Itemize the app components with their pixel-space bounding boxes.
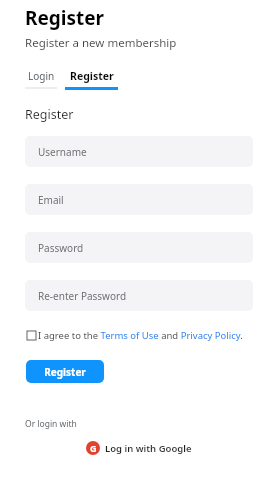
staticText: Login	[28, 69, 55, 83]
button[interactable]: Re-enter Password	[25, 280, 253, 311]
staticText: G	[90, 442, 97, 454]
button[interactable]: Register	[67, 67, 117, 85]
button[interactable]: Login	[27, 67, 56, 85]
staticText: Password	[38, 241, 84, 255]
button[interactable]: Username	[25, 136, 253, 167]
staticText: Re-enter Password	[38, 289, 127, 303]
button[interactable]: G	[83, 439, 195, 457]
staticText: Register	[70, 69, 114, 83]
button[interactable]: Register	[26, 360, 104, 383]
staticText: Log in with Google	[105, 442, 192, 455]
staticText: Register a new membership	[25, 35, 177, 51]
staticText: Register	[25, 106, 74, 123]
staticText: Username	[38, 145, 87, 159]
staticText: Register	[44, 365, 86, 379]
button[interactable]: I agree to the terms	[25, 329, 38, 342]
button[interactable]: Email	[25, 184, 253, 215]
staticText: Email	[38, 193, 64, 207]
staticText: Or login with	[25, 418, 77, 430]
staticText: Register	[25, 5, 105, 31]
staticText: I agree to the Terms of Use and Privacy …	[38, 329, 243, 342]
button[interactable]: Password	[25, 232, 253, 263]
